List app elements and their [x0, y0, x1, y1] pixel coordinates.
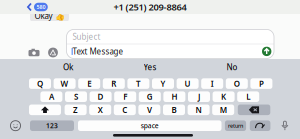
button[interactable]: S [65, 91, 87, 102]
staticText: K [221, 91, 226, 102]
staticText: N [196, 104, 202, 115]
button[interactable]: return [225, 120, 246, 131]
button[interactable]: Q [29, 78, 51, 89]
button[interactable]: Y [152, 78, 174, 89]
staticText: G [147, 91, 153, 102]
staticText: J [198, 91, 200, 102]
staticText: Okay 👍 [34, 11, 64, 21]
button[interactable]: Take photo [27, 46, 40, 58]
button[interactable]: W [54, 78, 76, 89]
button[interactable]: H [163, 91, 185, 102]
button[interactable]: V [138, 104, 160, 115]
staticText: Y [160, 78, 165, 89]
button[interactable]: Dictate [278, 120, 292, 131]
staticText: D [98, 91, 104, 102]
staticText: L [246, 91, 250, 102]
staticText: 123 [46, 121, 58, 130]
staticText: V [147, 104, 152, 115]
button[interactable]: 123 [30, 120, 74, 131]
button[interactable]: N [188, 104, 210, 115]
staticText: A [49, 91, 54, 102]
button[interactable]: X [89, 104, 111, 115]
staticText: X [98, 104, 103, 115]
staticText: space [141, 121, 159, 130]
button[interactable]: E [78, 78, 100, 89]
staticText: Z [73, 104, 78, 115]
staticText: Yes [143, 62, 156, 72]
staticText: M [220, 104, 227, 115]
button[interactable]: R [103, 78, 125, 89]
staticText: E [87, 78, 91, 89]
staticText: B [171, 104, 176, 115]
button[interactable]: Ok [27, 59, 109, 75]
staticText: +1 (251) 209-8864 [113, 1, 186, 13]
button[interactable]: T [127, 78, 149, 89]
button[interactable]: L [237, 91, 259, 102]
button[interactable]: I [201, 78, 223, 89]
button[interactable]: F [114, 91, 136, 102]
button[interactable]: Yes [109, 59, 191, 75]
staticText: P [259, 78, 264, 89]
staticText: R [111, 78, 116, 89]
staticText: Ok [63, 62, 73, 72]
staticText: C [122, 104, 127, 115]
button[interactable]: Send [262, 47, 271, 56]
staticText: T [136, 78, 141, 89]
staticText: H [171, 91, 177, 102]
button[interactable]: G [139, 91, 161, 102]
button[interactable]: Emoji keyboard [9, 120, 21, 131]
staticText: Subject [72, 31, 100, 42]
staticText: W [61, 78, 69, 89]
button[interactable]: C [114, 104, 136, 115]
button[interactable]: Back to Messages [0, 0, 56, 14]
button[interactable]: D [90, 91, 112, 102]
staticText: O [234, 78, 240, 89]
button[interactable]: space [78, 120, 221, 131]
button[interactable]: Shift [29, 104, 61, 115]
staticText: return [228, 122, 243, 129]
button[interactable]: K [213, 91, 235, 102]
button[interactable]: Delete [238, 104, 270, 115]
button[interactable]: No [191, 59, 273, 75]
staticText: S [74, 91, 78, 102]
button[interactable]: U [177, 78, 199, 89]
button[interactable]: O [226, 78, 248, 89]
button[interactable]: P [250, 78, 272, 89]
button[interactable]: J [188, 91, 210, 102]
button[interactable]: B [163, 104, 185, 115]
button[interactable]: Z [65, 104, 87, 115]
staticText: Q [37, 78, 43, 89]
button[interactable]: Handwriting [250, 120, 270, 131]
button[interactable]: M [212, 104, 234, 115]
button[interactable]: A [40, 91, 62, 102]
button[interactable]: Apps [46, 46, 59, 58]
staticText: Text Message [73, 46, 124, 57]
staticText: 580 [36, 3, 45, 11]
staticText: No [226, 62, 237, 72]
staticText: I [211, 78, 214, 89]
staticText: U [185, 78, 191, 89]
staticText: F [123, 91, 127, 102]
